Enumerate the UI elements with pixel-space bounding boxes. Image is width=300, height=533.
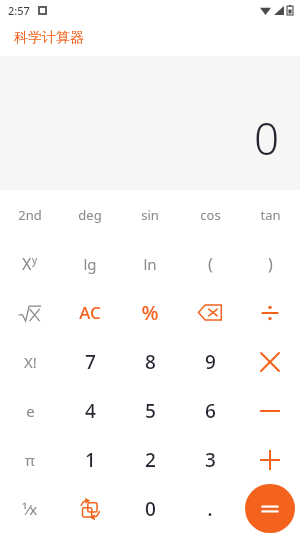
button[interactable]: Square root: [0, 288, 60, 337]
button[interactable]: 9: [180, 337, 240, 386]
staticText: ¹⁄x: [22, 499, 38, 519]
button[interactable]: AC: [60, 288, 120, 337]
staticText: cos: [200, 206, 221, 224]
button[interactable]: .: [180, 484, 240, 533]
staticText: deg: [78, 206, 102, 224]
button[interactable]: One over x: [0, 484, 60, 533]
button[interactable]: deg: [60, 190, 120, 239]
staticText: 科学计算器: [14, 29, 84, 47]
button[interactable]: π: [0, 435, 60, 484]
staticText: tan: [260, 206, 281, 224]
button[interactable]: tan: [240, 190, 300, 239]
staticText: sin: [141, 206, 159, 224]
staticText: 3: [205, 447, 216, 473]
staticText: π: [25, 450, 35, 470]
staticText: ln: [143, 254, 157, 274]
staticText: 6: [205, 398, 216, 424]
button[interactable]: 8: [120, 337, 180, 386]
button[interactable]: ): [240, 239, 300, 288]
button[interactable]: Backspace: [180, 288, 240, 337]
button[interactable]: Multiply: [240, 337, 300, 386]
staticText: 7: [85, 349, 96, 375]
staticText: 8: [145, 349, 156, 375]
button[interactable]: 6: [180, 386, 240, 435]
button[interactable]: 3: [180, 435, 240, 484]
button[interactable]: 2: [120, 435, 180, 484]
staticText: 2: [145, 447, 156, 473]
staticText: 0: [145, 496, 156, 522]
staticText: 0: [254, 108, 280, 168]
button[interactable]: Factorial: [0, 337, 60, 386]
staticText: 2nd: [18, 206, 42, 224]
button[interactable]: cos: [180, 190, 240, 239]
staticText: (: [208, 253, 213, 275]
button[interactable]: %: [120, 288, 180, 337]
button[interactable]: lg: [60, 239, 120, 288]
staticText: X!: [24, 352, 37, 372]
button[interactable]: Equals: [245, 484, 295, 533]
staticText: AC: [79, 301, 101, 324]
button[interactable]: Divide: [240, 288, 300, 337]
button[interactable]: Unit converter: [60, 484, 120, 533]
button[interactable]: 0: [120, 484, 180, 533]
button[interactable]: ln: [120, 239, 180, 288]
button[interactable]: 4: [60, 386, 120, 435]
button[interactable]: 1: [60, 435, 120, 484]
button[interactable]: 5: [120, 386, 180, 435]
button[interactable]: x to the power of y: [0, 239, 60, 288]
button[interactable]: 2nd: [0, 190, 60, 239]
staticText: %: [141, 299, 159, 326]
button[interactable]: e: [0, 386, 60, 435]
button[interactable]: (: [180, 239, 240, 288]
staticText: 2:57: [8, 3, 30, 18]
staticText: X: [22, 253, 32, 275]
button[interactable]: Minus: [240, 386, 300, 435]
staticText: y: [32, 253, 38, 267]
staticText: e: [26, 401, 35, 421]
staticText: 4: [85, 398, 96, 424]
staticText: 1: [85, 447, 96, 473]
staticText: lg: [83, 254, 97, 274]
button[interactable]: 7: [60, 337, 120, 386]
staticText: .: [207, 495, 213, 522]
button[interactable]: Plus: [240, 435, 300, 484]
staticText: 5: [145, 398, 156, 424]
button[interactable]: sin: [120, 190, 180, 239]
staticText: ): [268, 253, 273, 275]
staticText: 9: [205, 349, 216, 375]
